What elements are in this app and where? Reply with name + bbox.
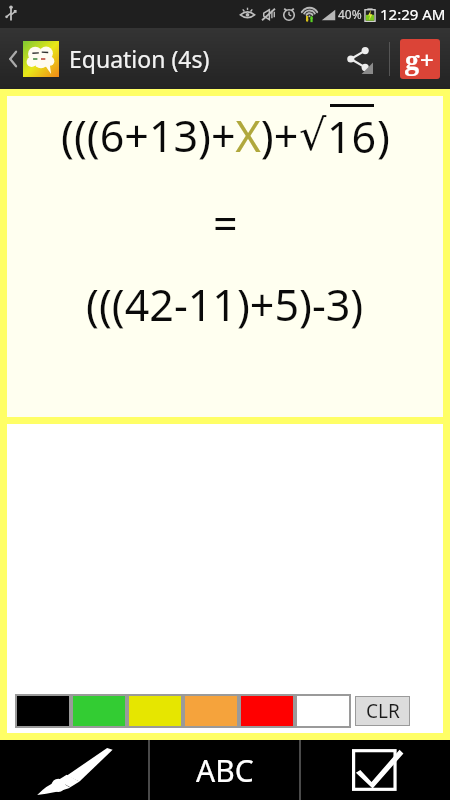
button[interactable]: CLR [355,696,410,726]
staticText: = [213,194,238,253]
staticText: √ [299,110,327,160]
staticText: 12:29 AM [380,4,446,24]
staticText: (((6+13)+X)+ [61,106,299,165]
staticText: ABC [196,750,254,791]
button[interactable]: Google Plus share [390,28,450,89]
button[interactable]: Draw [0,740,148,800]
staticText: CLR [366,698,400,724]
other: Navigate up [6,46,20,72]
staticText: ) [377,106,390,165]
staticText: (((42-11)+5)-3) [86,275,364,334]
button[interactable]: Share [327,28,389,89]
staticText: 40% [338,6,362,22]
button[interactable]: Text input [150,740,299,800]
staticText: Equation (4s) [69,43,210,74]
staticText: g+ [405,42,435,77]
staticText: 16 [327,107,377,166]
button[interactable]: Navigate up [6,28,210,89]
button[interactable]: Submit answer [301,740,450,800]
